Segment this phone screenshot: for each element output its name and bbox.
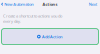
staticText: Add Action: [42, 34, 63, 39]
button[interactable]: Add Action: [1, 29, 98, 45]
staticText: Create a shortcut to actions you do ever…: [3, 13, 62, 24]
staticText: Actions: [42, 1, 57, 7]
button[interactable]: New Automation: [0, 0, 35, 8]
button[interactable]: Next: [87, 0, 98, 8]
staticText: Next: [89, 1, 97, 7]
staticText: New Automation: [4, 1, 33, 7]
